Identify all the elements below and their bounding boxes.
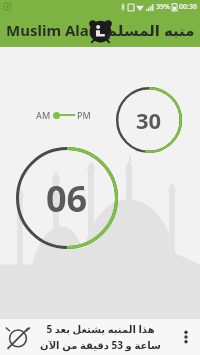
staticText: 00:36 <box>179 2 197 12</box>
staticText: PM <box>77 109 91 121</box>
button[interactable]: AM <box>36 109 91 121</box>
staticText: 39% <box>156 2 170 12</box>
staticText: AM <box>36 109 51 121</box>
staticText: Muslim Alarm <box>6 20 111 40</box>
button[interactable]: App logo <box>87 17 114 44</box>
button[interactable]: Alarm disabled <box>4 323 32 351</box>
staticText: هذا المنبه يشتغل بعد 5 <box>46 322 155 336</box>
button[interactable]: هذا المنبه يشتغل بعد 5 <box>40 322 161 352</box>
staticText: منبه المسلم <box>106 20 195 40</box>
button[interactable]: Minutes 30 <box>116 87 182 153</box>
staticText: ساعة و 53 دقيقة من الآن <box>40 338 161 352</box>
button[interactable]: More options <box>176 327 196 347</box>
staticText: 06 <box>46 174 88 223</box>
staticText: 30 <box>136 105 162 135</box>
button[interactable]: Hours 06 <box>16 147 118 249</box>
